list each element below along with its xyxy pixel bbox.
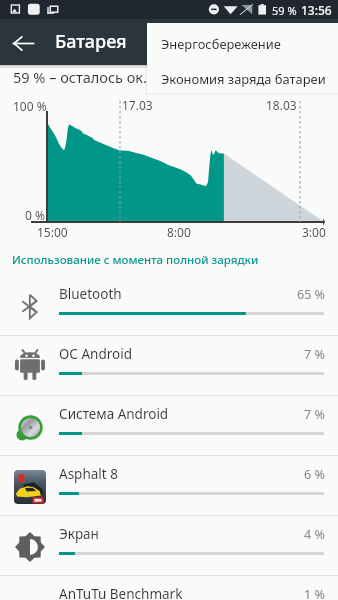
staticText: 7 % (304, 346, 325, 363)
staticText: 4 % (304, 526, 325, 543)
staticText: 17.03 (122, 97, 153, 113)
staticText: 0 % (25, 207, 45, 223)
staticText: 6 % (304, 466, 325, 483)
staticText: Экран (59, 525, 99, 543)
staticText: 100 % (13, 98, 47, 114)
button[interactable]: AnTuTu Benchmark (0, 576, 338, 600)
staticText: 65 % (297, 286, 325, 303)
staticText: 59 % – осталось ок. 11 ч (13, 67, 180, 87)
button[interactable]: Back (1, 21, 45, 65)
staticText: 13:56 (301, 2, 332, 18)
staticText: 1 % (304, 586, 325, 600)
staticText: Батарея (55, 29, 127, 54)
staticText: Система Android (59, 405, 169, 423)
staticText: ОС Android (59, 345, 132, 363)
staticText: Asphalt 8 (59, 465, 118, 483)
staticText: 59 % (272, 3, 297, 18)
button[interactable]: Bluetooth (0, 276, 338, 336)
staticText: Bluetooth (59, 285, 122, 303)
button[interactable]: Энергосбережение (147, 25, 338, 62)
button[interactable]: Экран (0, 516, 338, 576)
button[interactable]: Экономия заряда батареи (147, 62, 338, 95)
staticText: 3:00 (302, 224, 326, 240)
staticText: 18.03 (266, 97, 297, 113)
staticText: 7 % (304, 406, 325, 423)
staticText: Использование с момента полной зарядки (12, 252, 259, 268)
button[interactable]: ОС Android (0, 336, 338, 396)
staticText: Экономия заряда батареи (161, 70, 326, 88)
button[interactable]: Система Android (0, 396, 338, 456)
staticText: 8:00 (167, 224, 191, 240)
staticText: Энергосбережение (161, 35, 281, 53)
staticText: AnTuTu Benchmark (59, 585, 183, 600)
staticText: 15:00 (37, 224, 68, 240)
button[interactable]: Asphalt 8 (0, 456, 338, 516)
